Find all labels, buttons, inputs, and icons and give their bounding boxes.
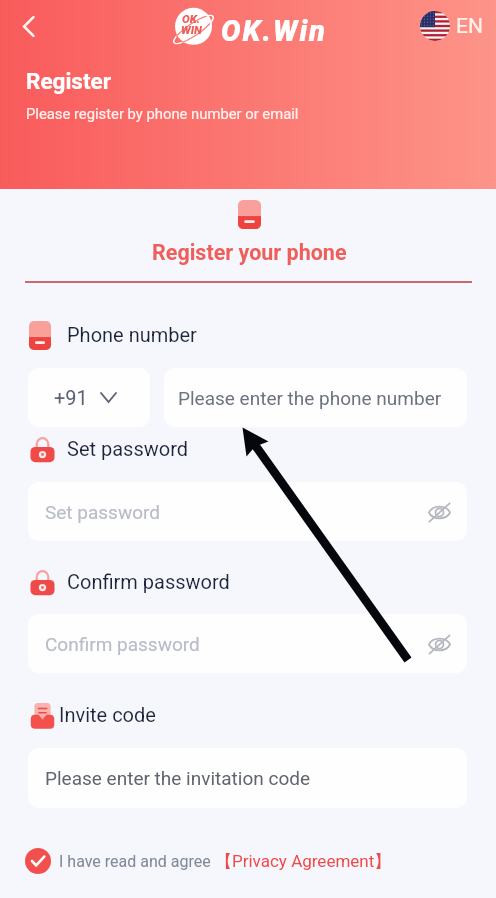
button[interactable]: Please enter the phone number: [164, 368, 467, 427]
button[interactable]: I have read and agree: [25, 848, 392, 874]
button[interactable]: Confirm password: [28, 614, 467, 673]
staticText: +91: [54, 386, 88, 409]
staticText: Set password: [45, 501, 160, 523]
staticText: Please enter the phone number: [178, 387, 442, 409]
staticText: Invite code: [59, 703, 156, 726]
staticText: Confirm password: [67, 570, 230, 593]
staticText: Register your phone: [152, 240, 347, 265]
staticText: WIN: [181, 23, 202, 36]
staticText: I have read and agree: [59, 852, 215, 871]
button[interactable]: Show password: [422, 495, 456, 529]
staticText: Please register by phone number or email: [26, 105, 299, 122]
staticText: EN: [456, 14, 483, 39]
staticText: Register: [26, 68, 111, 94]
staticText: Confirm password: [45, 633, 200, 655]
button[interactable]: Show password: [422, 627, 456, 661]
button[interactable]: EN: [420, 11, 483, 41]
button[interactable]: Back: [9, 7, 47, 45]
button[interactable]: +91: [28, 368, 150, 427]
staticText: 【Privacy Agreement】: [215, 851, 392, 872]
staticText: OK.: [182, 12, 201, 25]
staticText: OK.Win: [221, 14, 327, 48]
staticText: Set password: [67, 437, 189, 460]
button[interactable]: Set password: [28, 482, 467, 541]
staticText: Please enter the invitation code: [45, 767, 311, 789]
staticText: Phone number: [67, 323, 197, 346]
button[interactable]: Please enter the invitation code: [28, 748, 467, 808]
